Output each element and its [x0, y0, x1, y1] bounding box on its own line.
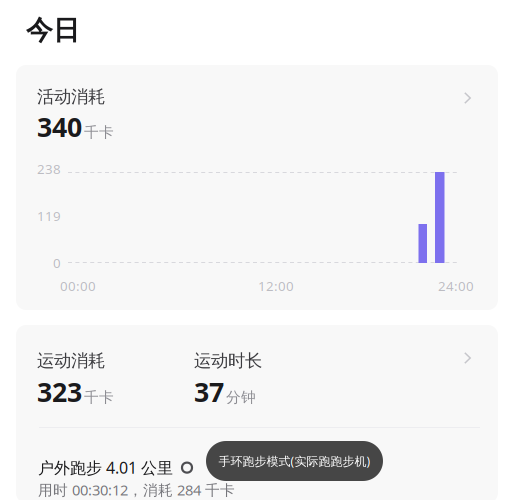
staticText: 运动消耗: [37, 350, 105, 371]
button[interactable]: 运动消耗: [16, 325, 498, 425]
staticText: 12:00: [258, 277, 294, 295]
staticText: 37: [194, 374, 224, 409]
staticText: 千卡: [84, 388, 114, 406]
staticText: 用时 00:30:12，消耗 284 千卡: [38, 480, 235, 499]
staticText: 340: [37, 109, 82, 144]
staticText: 运动时长: [194, 350, 262, 371]
staticText: 238: [37, 160, 61, 178]
staticText: 手环跑步模式(实际跑跑步机): [218, 453, 370, 469]
staticText: 119: [37, 207, 61, 225]
staticText: 千卡: [84, 123, 114, 141]
staticText: 活动消耗: [37, 86, 105, 107]
staticText: 323: [37, 374, 82, 409]
staticText: 0: [53, 254, 61, 272]
staticText: 24:00: [438, 277, 474, 295]
staticText: 今日: [26, 14, 80, 47]
staticText: 00:00: [60, 277, 96, 295]
button[interactable]: 户外跑步 4.01 公里: [16, 325, 498, 500]
staticText: 分钟: [226, 388, 256, 406]
button[interactable]: 活动消耗: [16, 65, 498, 310]
staticText: 户外跑步 4.01 公里: [38, 457, 173, 478]
